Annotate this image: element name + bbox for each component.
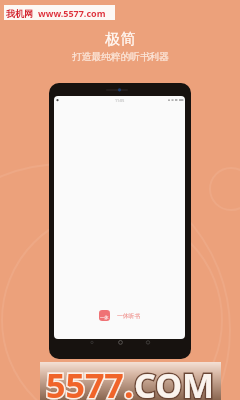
- staticText: .: [124, 362, 134, 400]
- staticText: www.5577.com: [38, 7, 106, 19]
- staticText: 11:05: [115, 98, 125, 103]
- staticText: 5577: [46, 362, 124, 400]
- staticText: 5577: [46, 362, 124, 400]
- staticText: 一休: [100, 315, 109, 320]
- staticText: 我机网: [6, 8, 33, 19]
- staticText: 一休听书: [117, 312, 141, 319]
- staticText: .: [124, 362, 134, 400]
- staticText: 极简: [105, 29, 136, 48]
- staticText: COM: [134, 362, 215, 400]
- staticText: COM: [134, 362, 215, 400]
- staticText: 打造最纯粹的听书利器: [72, 51, 169, 63]
